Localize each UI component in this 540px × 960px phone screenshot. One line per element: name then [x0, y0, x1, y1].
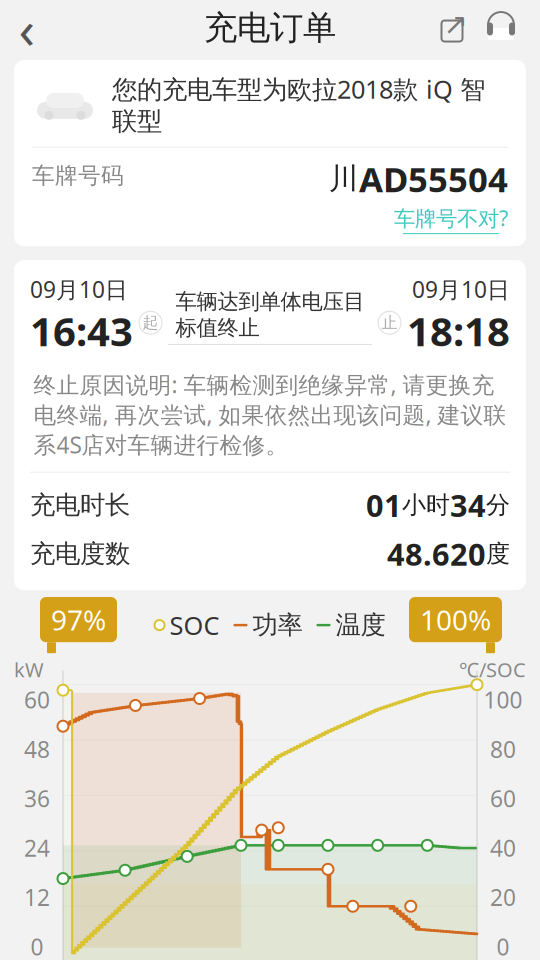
staticText: 24 — [24, 833, 50, 863]
button[interactable]: 车牌号不对? — [394, 204, 508, 234]
staticText: 0 — [30, 932, 43, 960]
staticText: ↗ — [443, 7, 468, 41]
staticText: 60 — [24, 685, 50, 715]
staticText: AD55504 — [359, 156, 508, 202]
button[interactable]: 客服 — [476, 4, 526, 52]
staticText: 20 — [490, 882, 516, 912]
staticText: 起 — [142, 313, 158, 333]
staticText: 车辆达到单体电压目 标值终止 — [175, 288, 364, 341]
staticText: 充电度数 — [30, 538, 130, 569]
staticText: 功率 — [252, 609, 302, 641]
staticText: 48 — [24, 734, 50, 764]
staticText: 100 — [483, 685, 522, 715]
staticText: 01 — [366, 485, 402, 525]
staticText: ℃/SOC — [459, 656, 526, 683]
staticText: SOC — [169, 608, 219, 642]
staticText: 充电时长 — [30, 489, 130, 521]
staticText: 09月10日 — [412, 274, 510, 304]
staticText: 16:43 — [30, 304, 133, 357]
staticText: 0 — [496, 932, 509, 960]
staticText: 川 — [329, 161, 358, 197]
staticText: 车牌号码 — [32, 162, 124, 190]
button[interactable]: 分享 — [428, 4, 476, 52]
staticText: kW — [14, 656, 44, 683]
staticText: 97% — [51, 601, 106, 638]
staticText: 终止原因说明: 车辆检测到绝缘异常, 请更换充电终端, 再次尝试, 如果依然出现… — [33, 369, 506, 460]
staticText: 您的充电车型为欧拉2018款 iQ 智联型 — [112, 72, 485, 137]
staticText: ‹ — [18, 0, 35, 63]
staticText: 小时 — [402, 490, 450, 520]
staticText: 12 — [24, 882, 50, 912]
staticText: 充电订单 — [204, 7, 336, 48]
staticText: 分 — [486, 490, 510, 520]
staticText: 度 — [486, 539, 510, 568]
staticText: 40 — [490, 833, 516, 863]
staticText: 18:18 — [407, 304, 510, 357]
staticText: 100% — [420, 601, 491, 638]
staticText: 09月10日 — [30, 274, 128, 304]
staticText: 36 — [24, 783, 50, 813]
staticText: 车牌号不对? — [394, 204, 508, 232]
staticText: 60 — [490, 783, 516, 813]
staticText: 温度 — [335, 609, 385, 641]
staticText: 80 — [490, 734, 516, 764]
button[interactable]: 返回 — [0, 4, 54, 52]
staticText: 止 — [381, 313, 397, 333]
staticText: 48.620 — [387, 533, 486, 574]
staticText: 34 — [450, 485, 486, 525]
